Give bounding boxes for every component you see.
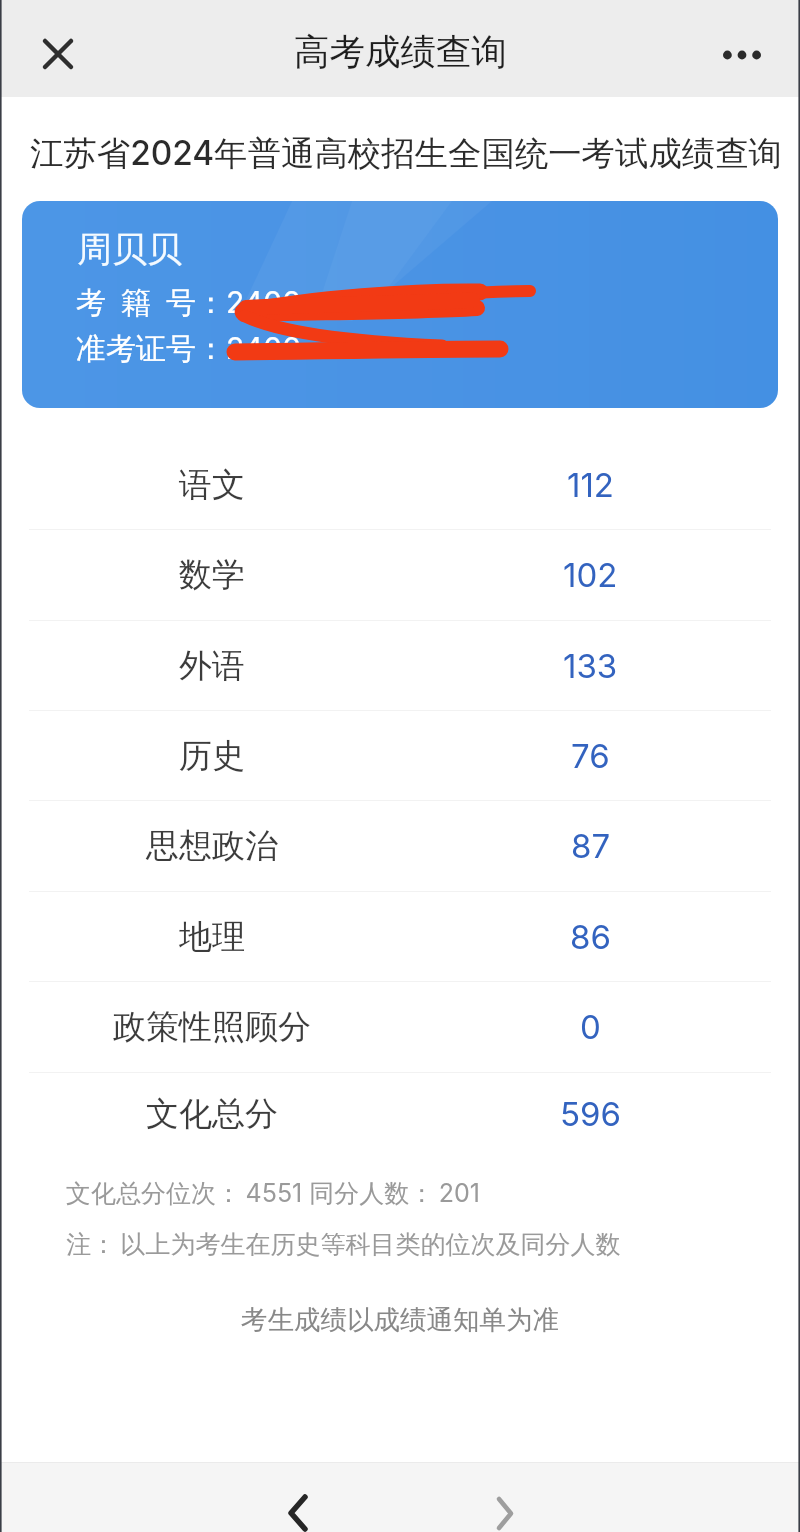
staticText: 历史 [179,735,245,777]
staticText: 文化总分 [146,1093,278,1135]
staticText: 0 [580,1007,601,1047]
staticText: 周贝贝 [77,227,182,271]
staticText: 政策性照顾分 [113,1006,311,1048]
button[interactable]: 数学 [24,530,776,620]
button[interactable]: Back [228,1462,368,1532]
button[interactable]: 文化总分 [24,1073,776,1155]
button[interactable]: 外语 [24,621,776,710]
button[interactable]: 思想政治 [24,801,776,891]
staticText: 外语 [179,645,245,687]
staticText: 语文 [179,464,245,506]
staticText: 地理 [179,916,245,958]
staticText: 数学 [179,554,245,596]
staticText: 文化总分位次： 4551 同分人数： 201 [66,1178,481,1210]
button[interactable]: 周贝贝 [22,201,778,408]
staticText: 思想政治 [146,825,278,867]
staticText: 86 [570,917,611,957]
staticText: 考生成绩以成绩通知单为准 [0,1303,800,1336]
staticText: 102 [563,555,618,595]
staticText: 87 [571,826,611,866]
button[interactable]: 政策性照顾分 [24,982,776,1072]
button[interactable]: Close [20,16,96,92]
staticText: 高考成绩查询 [294,30,507,75]
staticText: 76 [571,736,610,776]
staticText: 江苏省2024年普通高校招生全国统一考试成绩查询 [30,133,782,175]
staticText: 考 籍 号：2400 [76,284,302,322]
button[interactable]: 语文 [24,440,776,529]
staticText: 133 [563,646,618,686]
button[interactable]: More options [707,20,777,90]
staticText: 准考证号：2400 [76,330,302,368]
staticText: 112 [567,465,614,505]
staticText: 注： 以上为考生在历史等科目类的位次及同分人数 [66,1229,621,1261]
button[interactable]: Forward [435,1462,575,1532]
staticText: 596 [560,1094,621,1134]
button[interactable]: 历史 [24,711,776,800]
button[interactable]: 地理 [24,892,776,981]
